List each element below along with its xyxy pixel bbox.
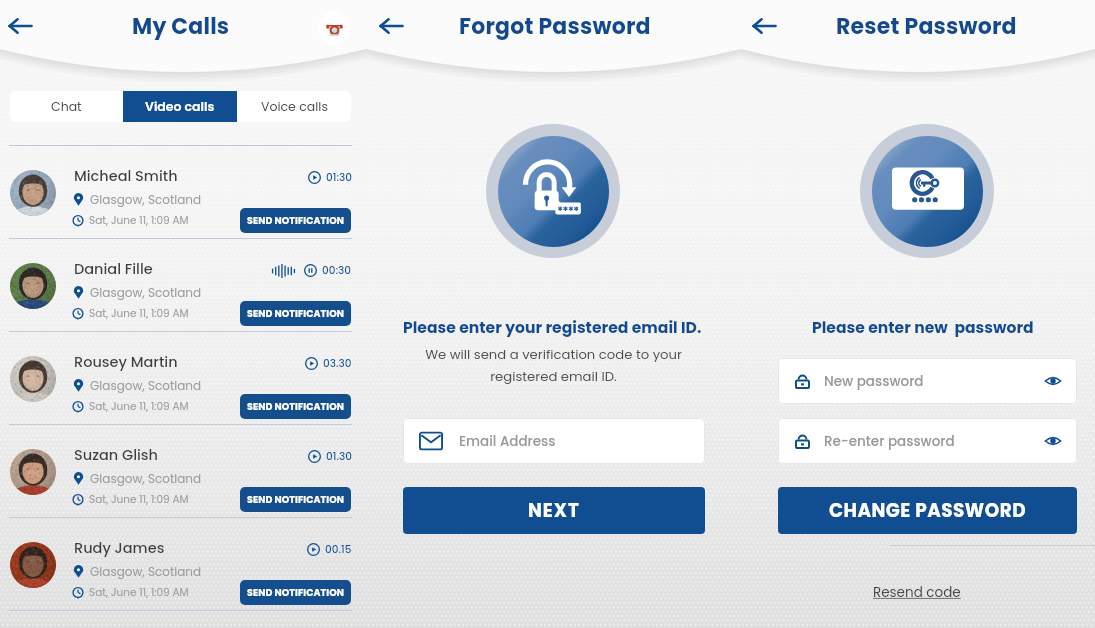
staticText: Sat, June 11, 1:09 AM bbox=[89, 306, 189, 321]
button[interactable]: Rudy James avatar bbox=[10, 542, 56, 588]
staticText: 00:30 bbox=[322, 263, 352, 278]
button[interactable]: Play recording bbox=[308, 450, 321, 463]
button[interactable]: SEND NOTIFICATION bbox=[240, 394, 351, 419]
staticText: Sat, June 11, 1:09 AM bbox=[89, 585, 189, 600]
staticText: Glasgow, Scotland bbox=[90, 470, 202, 487]
button[interactable]: Suzan Glish avatar bbox=[0, 425, 366, 517]
staticText: Micheal Smith bbox=[74, 166, 178, 186]
button[interactable]: Show password bbox=[1045, 433, 1061, 449]
staticText: 01.30 bbox=[326, 449, 352, 464]
staticText: Glasgow, Scotland bbox=[90, 377, 202, 394]
button[interactable]: Danial Fille avatar bbox=[0, 239, 366, 331]
staticText: SEND NOTIFICATION bbox=[247, 493, 345, 506]
button[interactable]: Resend code bbox=[873, 583, 961, 602]
button[interactable]: Rousey Martin avatar bbox=[10, 356, 56, 402]
staticText: Sat, June 11, 1:09 AM bbox=[89, 492, 189, 507]
button[interactable]: Email Address bbox=[403, 418, 705, 464]
button[interactable]: Video calls bbox=[123, 91, 237, 122]
staticText: SEND NOTIFICATION bbox=[247, 586, 345, 599]
staticText: SEND NOTIFICATION bbox=[247, 307, 345, 320]
button[interactable]: Voice calls bbox=[237, 91, 351, 122]
staticText: My Calls bbox=[132, 11, 230, 42]
staticText: 03.30 bbox=[323, 356, 352, 371]
button[interactable]: Play recording bbox=[307, 543, 320, 556]
button[interactable]: Micheal Smith avatar bbox=[0, 146, 366, 238]
staticText: Video calls bbox=[145, 98, 215, 115]
staticText: Please enter your registered email ID. bbox=[403, 317, 702, 339]
staticText: Sat, June 11, 1:09 AM bbox=[89, 213, 189, 228]
button[interactable]: New password bbox=[778, 358, 1077, 404]
button[interactable]: Play recording bbox=[305, 357, 318, 370]
staticText: Glasgow, Scotland bbox=[90, 284, 202, 301]
button[interactable]: Micheal Smith avatar bbox=[10, 170, 56, 216]
staticText: Resend code bbox=[873, 583, 961, 602]
staticText: Suzan Glish bbox=[74, 445, 159, 465]
button[interactable]: Re-enter password bbox=[778, 418, 1077, 464]
button[interactable]: Back bbox=[752, 14, 776, 38]
button[interactable]: Recent calls bbox=[318, 12, 350, 44]
staticText: Glasgow, Scotland bbox=[90, 191, 202, 208]
button[interactable]: Play recording bbox=[308, 171, 321, 184]
button[interactable]: Show password bbox=[1045, 373, 1061, 389]
staticText: Please enter new password bbox=[812, 317, 1034, 339]
button[interactable]: Back bbox=[8, 14, 32, 38]
button[interactable]: SEND NOTIFICATION bbox=[240, 580, 351, 605]
staticText: NEXT bbox=[528, 498, 580, 524]
staticText: 01:30 bbox=[326, 170, 352, 185]
button[interactable]: Back bbox=[379, 14, 403, 38]
button[interactable]: CHANGE PASSWORD bbox=[778, 487, 1077, 534]
button[interactable]: Suzan Glish avatar bbox=[10, 449, 56, 495]
button[interactable]: Danial Fille avatar bbox=[10, 263, 56, 309]
staticText: Danial Fille bbox=[74, 259, 153, 279]
staticText: We will send a verification code to your… bbox=[366, 345, 741, 385]
staticText: SEND NOTIFICATION bbox=[247, 214, 345, 227]
button[interactable]: Rudy James avatar bbox=[0, 518, 366, 610]
button[interactable]: SEND NOTIFICATION bbox=[240, 487, 351, 512]
staticText: Glasgow, Scotland bbox=[90, 563, 202, 580]
button[interactable]: SEND NOTIFICATION bbox=[240, 301, 351, 326]
staticText: Rousey Martin bbox=[74, 352, 178, 372]
button[interactable]: Pause recording bbox=[304, 264, 317, 277]
staticText: SEND NOTIFICATION bbox=[247, 400, 345, 413]
staticText: Chat bbox=[51, 98, 82, 115]
staticText: Re-enter password bbox=[824, 432, 1045, 451]
staticText: Rudy James bbox=[74, 538, 165, 558]
staticText: Forgot Password bbox=[459, 11, 651, 42]
button[interactable]: NEXT bbox=[403, 487, 705, 534]
button[interactable]: SEND NOTIFICATION bbox=[240, 208, 351, 233]
button[interactable]: Rousey Martin avatar bbox=[0, 332, 366, 424]
staticText: New password bbox=[824, 372, 1045, 391]
staticText: Email Address bbox=[459, 432, 556, 451]
staticText: Reset Password bbox=[836, 11, 1017, 42]
staticText: Voice calls bbox=[261, 98, 328, 115]
staticText: Sat, June 11, 1:09 AM bbox=[89, 399, 189, 414]
staticText: 00.15 bbox=[325, 542, 352, 557]
staticText: CHANGE PASSWORD bbox=[829, 498, 1027, 524]
button[interactable]: Chat bbox=[10, 91, 123, 122]
